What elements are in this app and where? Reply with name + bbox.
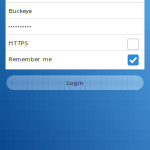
staticText: HTTPS (8, 39, 27, 47)
staticText: Login (66, 78, 83, 87)
staticText: Remember me (8, 55, 51, 63)
button[interactable] (6, 19, 144, 34)
button[interactable]: Buckeye (6, 3, 144, 18)
button[interactable]: Remember me (6, 51, 144, 67)
staticText: Buckeye (8, 6, 31, 15)
button[interactable]: HTTPS (6, 35, 144, 50)
button[interactable]: Login (6, 75, 143, 90)
